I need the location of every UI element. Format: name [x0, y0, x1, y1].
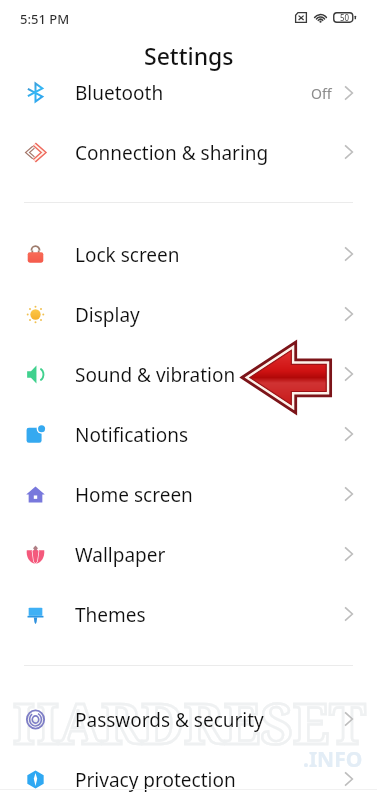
staticText: Display: [75, 302, 140, 328]
staticText: Connection & sharing: [75, 140, 269, 166]
staticText: Settings: [144, 40, 234, 71]
staticText: HARDRESET: [13, 684, 366, 760]
staticText: Lock screen: [75, 242, 180, 268]
other: Battery 50 percent: [333, 12, 357, 23]
button[interactable]: Themes: [0, 584, 377, 644]
staticText: 5:51 PM: [20, 10, 70, 28]
staticText: Bluetooth: [75, 80, 164, 106]
button[interactable]: Home screen: [0, 464, 377, 524]
button[interactable]: Notifications: [0, 404, 377, 464]
other: No SIM: [295, 12, 307, 23]
staticText: Notifications: [75, 422, 189, 448]
button[interactable]: Lock screen: [0, 224, 377, 284]
button[interactable]: Bluetooth: [0, 62, 377, 122]
button[interactable]: Connection & sharing: [0, 122, 377, 182]
staticText: Off: [311, 84, 332, 103]
button[interactable]: Privacy protection: [0, 749, 377, 800]
button[interactable]: Wallpaper: [0, 524, 377, 584]
staticText: Themes: [75, 602, 146, 628]
staticText: Home screen: [75, 482, 193, 508]
other: Wi-Fi: [313, 12, 328, 23]
button[interactable]: Display: [0, 284, 377, 344]
staticText: .INFO: [303, 745, 363, 774]
button[interactable]: Sound & vibration: [0, 344, 377, 404]
staticText: Sound & vibration: [75, 362, 236, 388]
staticText: 50: [340, 12, 350, 23]
staticText: Privacy protection: [75, 767, 236, 793]
staticText: Passwords & security: [75, 707, 264, 733]
staticText: Wallpaper: [75, 542, 166, 568]
button[interactable]: Passwords & security: [0, 689, 377, 749]
